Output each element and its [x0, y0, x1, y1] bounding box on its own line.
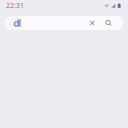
staticText: d	[13, 17, 19, 29]
button[interactable]: d	[5, 16, 123, 30]
staticText: 22:31	[6, 1, 24, 10]
